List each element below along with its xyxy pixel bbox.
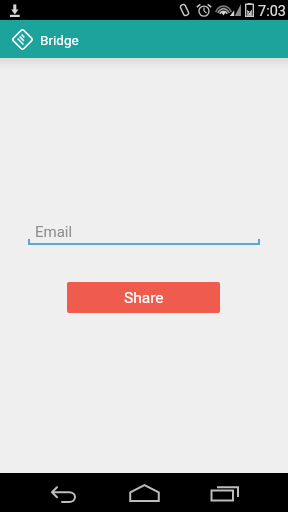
button[interactable]: Recent apps [206, 482, 246, 512]
button[interactable]: Bridge logo [10, 27, 35, 52]
button[interactable]: Email [28, 218, 260, 246]
button[interactable]: Back [44, 482, 84, 512]
staticText: Bridge [40, 32, 79, 48]
button[interactable]: Home [129, 478, 160, 508]
staticText: Email [35, 223, 73, 241]
staticText: 7:03 [258, 3, 286, 20]
button[interactable]: Share [67, 282, 220, 313]
staticText: Share [124, 289, 164, 307]
